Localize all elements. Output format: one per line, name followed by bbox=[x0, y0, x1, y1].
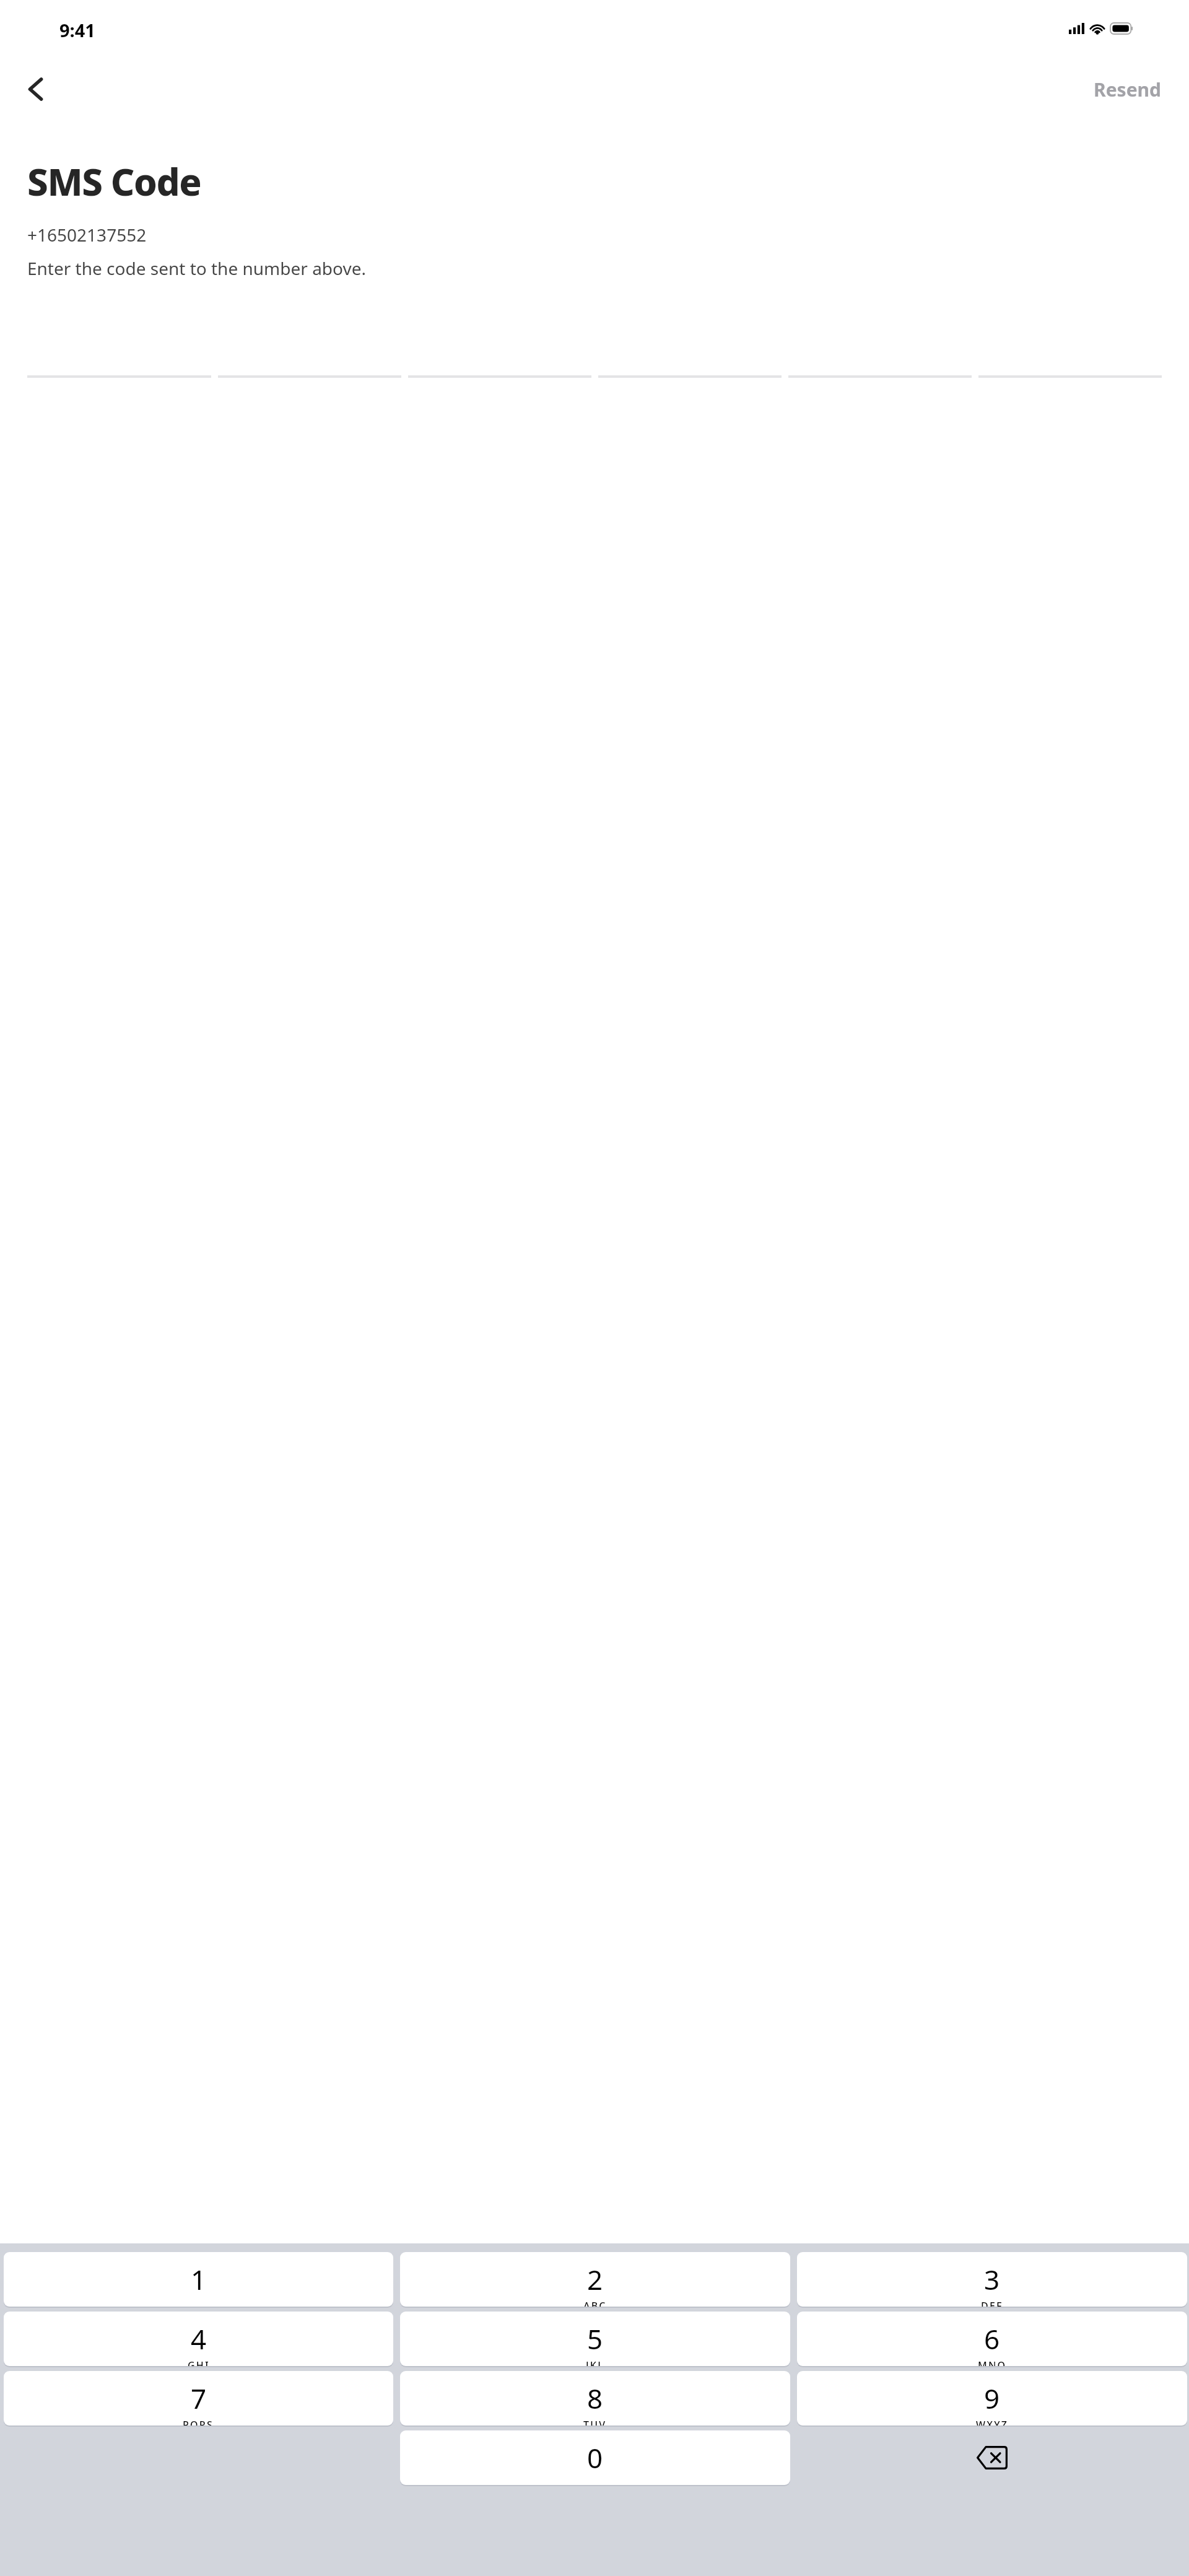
staticText: JKL bbox=[586, 2359, 604, 2366]
staticText: GHI bbox=[188, 2359, 210, 2366]
button[interactable]: 2 bbox=[400, 2252, 790, 2307]
button[interactable]: Digit 6 bbox=[978, 357, 1162, 378]
staticText: DEF bbox=[981, 2299, 1003, 2307]
button[interactable]: Digit 2 bbox=[218, 357, 401, 378]
button[interactable]: Digit 4 bbox=[598, 357, 782, 378]
staticText: 4 bbox=[191, 2320, 207, 2357]
staticText: +16502137552 bbox=[27, 223, 147, 247]
button[interactable]: 8 bbox=[400, 2371, 790, 2425]
staticText: 1 bbox=[191, 2261, 207, 2298]
staticText: 9:41 bbox=[59, 18, 95, 42]
button[interactable]: 3 bbox=[797, 2252, 1187, 2307]
button[interactable]: 9 bbox=[797, 2371, 1187, 2425]
staticText: 8 bbox=[587, 2380, 603, 2417]
button[interactable]: Digit 5 bbox=[788, 357, 972, 378]
button[interactable]: 7 bbox=[4, 2371, 393, 2425]
staticText: 3 bbox=[984, 2261, 1000, 2298]
staticText: TUV bbox=[583, 2418, 607, 2425]
button[interactable]: 6 bbox=[797, 2312, 1187, 2366]
button[interactable]: 4 bbox=[4, 2312, 393, 2366]
button[interactable]: Back bbox=[16, 70, 54, 108]
button[interactable]: Digit 3 bbox=[408, 357, 591, 378]
button[interactable]: Digit 1 bbox=[27, 357, 211, 378]
button[interactable]: 5 bbox=[400, 2312, 790, 2366]
staticText: Enter the code sent to the number above. bbox=[27, 256, 366, 280]
button[interactable]: 1 bbox=[4, 2252, 393, 2307]
button[interactable]: Delete bbox=[797, 2430, 1187, 2485]
button[interactable]: 0 bbox=[400, 2430, 790, 2485]
staticText: WXYZ bbox=[976, 2418, 1009, 2425]
staticText: 6 bbox=[984, 2320, 1000, 2357]
staticText: ABC bbox=[583, 2299, 607, 2307]
staticText: PQRS bbox=[183, 2418, 214, 2425]
staticText: 9 bbox=[984, 2380, 1000, 2417]
staticText: Resend bbox=[1094, 77, 1162, 102]
staticText: MNO bbox=[978, 2359, 1007, 2366]
staticText: 0 bbox=[587, 2439, 603, 2476]
staticText: SMS Code bbox=[27, 156, 201, 207]
staticText: 5 bbox=[587, 2320, 603, 2357]
staticText: 2 bbox=[587, 2261, 603, 2298]
button[interactable]: Resend bbox=[1066, 68, 1189, 111]
staticText: 7 bbox=[191, 2380, 207, 2417]
